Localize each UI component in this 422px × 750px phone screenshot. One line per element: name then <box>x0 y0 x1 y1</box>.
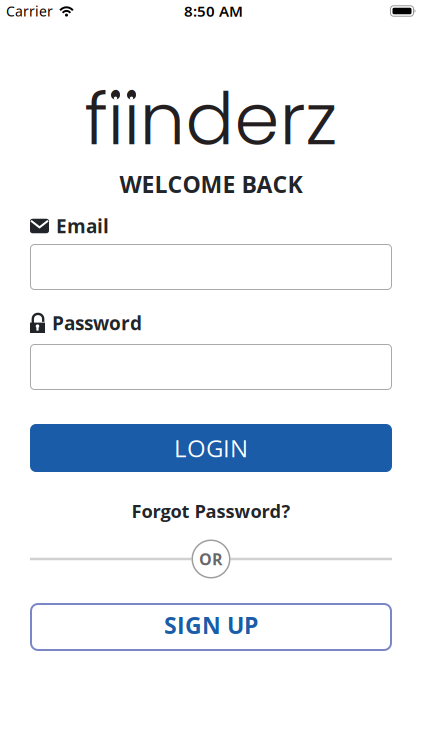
staticText: SIGN UP <box>164 609 258 641</box>
staticText: Carrier <box>6 1 53 21</box>
staticText: LOGIN <box>174 432 248 464</box>
button[interactable]: Forgot Password? <box>131 499 290 523</box>
staticText: WELCOME BACK <box>119 168 302 200</box>
staticText: 8:50 AM <box>184 1 243 21</box>
button[interactable]: LOGIN <box>30 424 392 472</box>
button[interactable]: Password <box>30 344 392 390</box>
button[interactable]: SIGN UP <box>30 603 392 651</box>
button[interactable]: Email <box>30 244 392 290</box>
staticText: fiinderz <box>84 69 337 169</box>
staticText: Forgot Password? <box>131 499 290 523</box>
staticText: Password <box>52 310 142 336</box>
staticText: OR <box>199 548 223 570</box>
staticText: Email <box>56 213 109 239</box>
